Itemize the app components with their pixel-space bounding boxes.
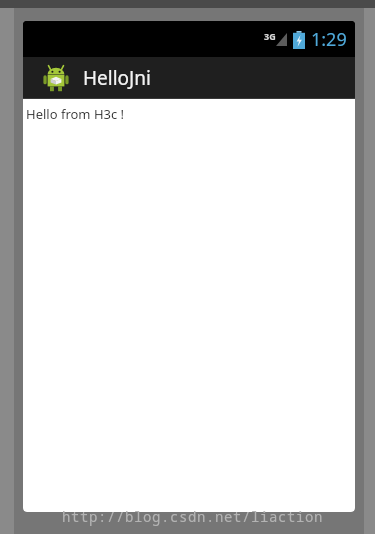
- staticText: HelloJni: [83, 65, 151, 91]
- staticText: Hello from H3c !: [26, 105, 125, 123]
- other: App icon: [41, 63, 71, 93]
- staticText: 1:29: [311, 27, 347, 52]
- staticText: 3G: [264, 30, 276, 42]
- staticText: http://blog.csdn.net/liaction: [62, 507, 323, 526]
- button[interactable]: App icon: [23, 57, 355, 98]
